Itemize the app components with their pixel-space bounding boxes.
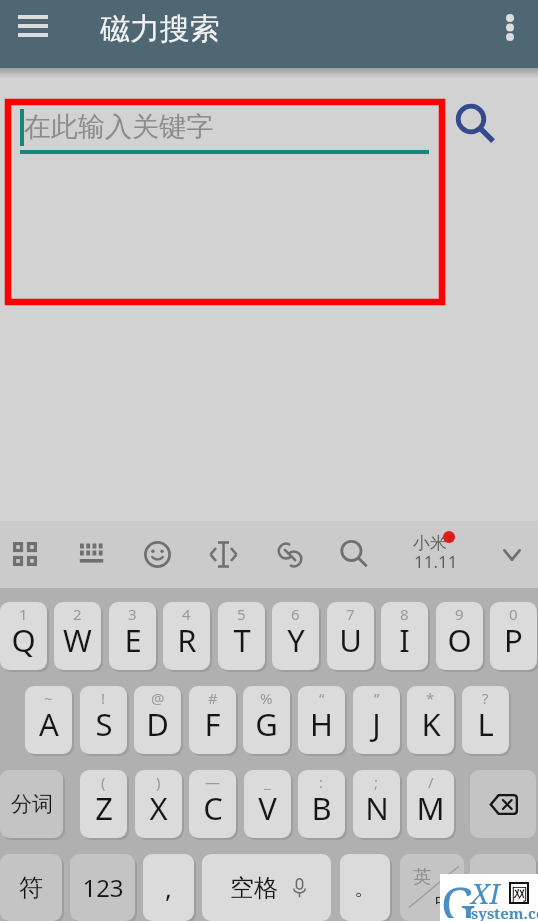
- staticText: V: [258, 787, 277, 829]
- staticText: 符: [19, 873, 43, 903]
- staticText: 3: [128, 604, 137, 624]
- staticText: 磁力搜索: [100, 10, 220, 48]
- button[interactable]: 8: [381, 602, 428, 670]
- staticText: H: [310, 703, 333, 745]
- button[interactable]: 123: [70, 854, 135, 921]
- staticText: Z: [95, 787, 113, 829]
- button[interactable]: “: [298, 686, 345, 754]
- button[interactable]: ”: [353, 686, 400, 754]
- staticText: G: [441, 871, 476, 918]
- button[interactable]: [470, 854, 536, 921]
- staticText: %: [260, 688, 273, 708]
- button[interactable]: —: [189, 770, 236, 838]
- button[interactable]: 在此输入关键字: [14, 105, 436, 157]
- staticText: O: [447, 619, 472, 661]
- button[interactable]: 0: [490, 602, 537, 670]
- button[interactable]: Search: [453, 101, 493, 141]
- staticText: P: [504, 619, 523, 661]
- staticText: 123: [82, 871, 124, 904]
- button[interactable]: 分词: [0, 770, 63, 838]
- button[interactable]: 1: [0, 602, 47, 670]
- button[interactable]: Insert link: [268, 533, 312, 577]
- staticText: 在此输入关键字: [24, 110, 213, 144]
- button[interactable]: @: [134, 686, 181, 754]
- button[interactable]: Apps: [3, 532, 47, 576]
- staticText: L: [477, 703, 494, 745]
- staticText: M: [416, 787, 445, 829]
- staticText: G: [255, 703, 278, 745]
- staticText: 英: [413, 866, 431, 889]
- button[interactable]: 。: [340, 854, 390, 921]
- staticText: A: [39, 703, 59, 745]
- button[interactable]: /: [407, 770, 454, 838]
- button[interactable]: ;: [353, 770, 400, 838]
- staticText: 4: [182, 604, 191, 624]
- button[interactable]: !: [80, 686, 127, 754]
- staticText: *: [426, 688, 435, 708]
- staticText: 小米: [413, 533, 447, 554]
- button[interactable]: 3: [109, 602, 156, 670]
- staticText: R: [177, 619, 197, 661]
- staticText: U: [339, 619, 362, 661]
- button[interactable]: 2: [54, 602, 101, 670]
- staticText: 1: [19, 604, 28, 624]
- button[interactable]: ): [135, 770, 182, 838]
- staticText: 6: [291, 604, 300, 624]
- button[interactable]: Search: [332, 532, 376, 576]
- button[interactable]: 6: [272, 602, 319, 670]
- button[interactable]: ,: [143, 854, 194, 921]
- staticText: Y: [287, 619, 305, 661]
- staticText: !: [101, 688, 106, 708]
- staticText: K: [421, 703, 441, 745]
- staticText: ”: [374, 688, 380, 708]
- staticText: 5: [237, 604, 246, 624]
- button[interactable]: More options: [482, 2, 538, 53]
- button[interactable]: 小米: [405, 531, 463, 577]
- button[interactable]: Backspace: [470, 770, 536, 838]
- staticText: 中: [435, 891, 453, 914]
- button[interactable]: (: [80, 770, 127, 838]
- button[interactable]: *: [407, 686, 454, 754]
- button[interactable]: ~: [25, 686, 72, 754]
- staticText: ?: [482, 688, 489, 708]
- button[interactable]: %: [243, 686, 290, 754]
- button[interactable]: Open navigation menu: [3, 0, 62, 51]
- staticText: 0: [509, 604, 518, 624]
- staticText: 分词: [11, 791, 53, 817]
- staticText: system.com: [471, 903, 538, 921]
- staticText: J: [372, 703, 381, 745]
- staticText: 7: [346, 604, 355, 624]
- staticText: N: [365, 787, 389, 829]
- staticText: 。: [354, 874, 376, 902]
- button[interactable]: 空格: [202, 854, 331, 921]
- button[interactable]: Emoji: [135, 532, 179, 576]
- button[interactable]: Switch to English: [400, 854, 464, 921]
- staticText: —: [205, 772, 221, 792]
- staticText: ,: [165, 870, 172, 905]
- staticText: ;: [374, 772, 379, 792]
- staticText: ~: [44, 688, 53, 708]
- button[interactable]: 符: [0, 854, 62, 921]
- button[interactable]: Switch keyboard: [69, 532, 113, 576]
- button[interactable]: :: [298, 770, 345, 838]
- staticText: 网: [511, 884, 527, 902]
- staticText: 11.11: [414, 550, 458, 573]
- button[interactable]: 7: [327, 602, 374, 670]
- staticText: 空格: [230, 873, 278, 903]
- staticText: T: [233, 619, 251, 661]
- button[interactable]: ?: [462, 686, 509, 754]
- button[interactable]: 4: [163, 602, 210, 670]
- staticText: F: [204, 703, 221, 745]
- button[interactable]: Move cursor: [201, 532, 245, 576]
- staticText: E: [124, 619, 142, 661]
- staticText: D: [146, 703, 169, 745]
- staticText: Q: [11, 619, 36, 661]
- button[interactable]: _: [244, 770, 291, 838]
- staticText: ): [156, 772, 161, 792]
- button[interactable]: #: [189, 686, 236, 754]
- button[interactable]: Hide keyboard: [487, 530, 536, 579]
- staticText: @: [151, 688, 165, 708]
- staticText: #: [208, 688, 218, 708]
- button[interactable]: 5: [218, 602, 265, 670]
- button[interactable]: 9: [436, 602, 483, 670]
